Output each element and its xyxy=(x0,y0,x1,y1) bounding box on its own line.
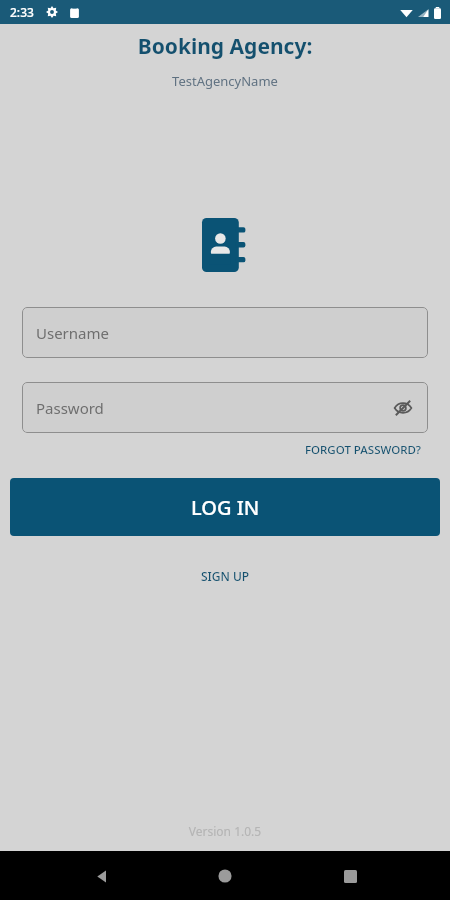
staticText: LOG IN xyxy=(191,494,260,521)
button[interactable]: Recent apps xyxy=(326,852,374,900)
staticText: Version 1.0.5 xyxy=(0,823,450,839)
button[interactable]: Home xyxy=(201,852,249,900)
button[interactable]: Password xyxy=(22,382,428,433)
button[interactable]: LOG IN xyxy=(10,478,440,536)
button[interactable]: Toggle password visibility xyxy=(388,393,418,423)
staticText: TestAgencyName xyxy=(0,72,450,90)
button[interactable]: FORGOT PASSWORD? xyxy=(303,440,423,460)
staticText: Password xyxy=(36,398,104,418)
staticText: SIGN UP xyxy=(201,568,250,584)
staticText: Booking Agency: xyxy=(0,32,450,61)
button[interactable]: Username xyxy=(22,307,428,358)
staticText: Username xyxy=(36,323,109,343)
staticText: FORGOT PASSWORD? xyxy=(305,442,421,458)
staticText: 2:33 xyxy=(10,4,34,20)
button[interactable]: Back xyxy=(77,852,125,900)
button[interactable]: SIGN UP xyxy=(191,564,260,588)
